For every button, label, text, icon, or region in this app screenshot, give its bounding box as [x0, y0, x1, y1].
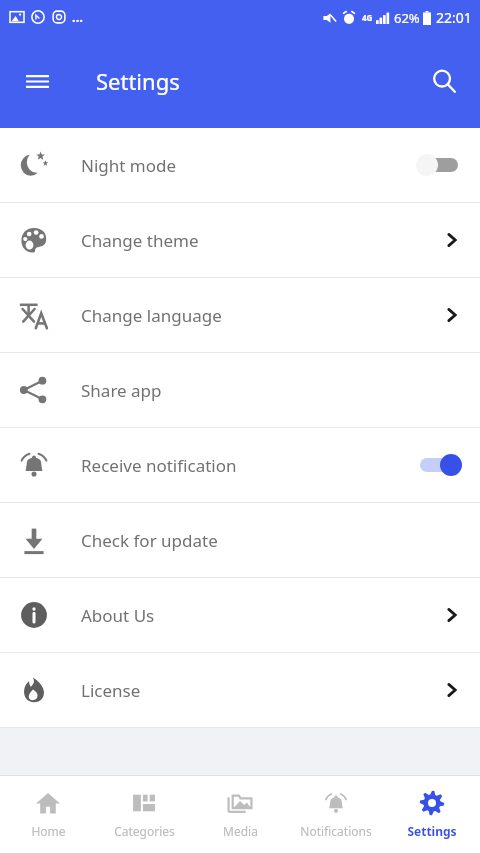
staticText: Settings — [96, 66, 180, 96]
staticText: 22:01 — [436, 8, 472, 27]
button[interactable]: Receive notification — [0, 428, 480, 502]
staticText: Change theme — [81, 229, 442, 252]
staticText: 62% — [394, 9, 420, 27]
button[interactable]: Check for update — [0, 503, 480, 577]
button[interactable]: Categories — [96, 776, 192, 853]
button[interactable]: License — [0, 653, 480, 727]
button[interactable]: Change theme — [0, 203, 480, 277]
staticText: ... — [72, 8, 83, 26]
staticText: Change language — [81, 304, 442, 327]
button[interactable]: Notifications — [288, 776, 384, 853]
staticText: Night mode — [81, 154, 416, 177]
button[interactable]: Media — [192, 776, 288, 853]
staticText: Media — [223, 823, 258, 839]
button[interactable]: Home — [0, 776, 96, 853]
staticText: Notifications — [300, 823, 372, 839]
staticText: Receive notification — [81, 454, 416, 477]
button[interactable]: About Us — [0, 578, 480, 652]
staticText: License — [81, 679, 442, 702]
button[interactable]: Search — [421, 58, 467, 104]
staticText: Check for update — [81, 529, 462, 552]
button[interactable]: Change language — [0, 278, 480, 352]
staticText: Settings — [407, 823, 457, 839]
staticText: Categories — [114, 823, 175, 839]
staticText: Home — [31, 823, 66, 839]
button[interactable]: Settings — [384, 776, 480, 853]
button[interactable]: Night mode — [0, 128, 480, 202]
button[interactable]: Night mode toggle, off — [416, 152, 462, 178]
button[interactable]: Receive notification toggle, on — [416, 452, 462, 478]
staticText: About Us — [81, 604, 442, 627]
button[interactable]: Share app — [0, 353, 480, 427]
staticText: 4G — [362, 12, 373, 23]
button[interactable]: Open navigation menu — [14, 58, 60, 104]
staticText: Share app — [81, 379, 462, 402]
